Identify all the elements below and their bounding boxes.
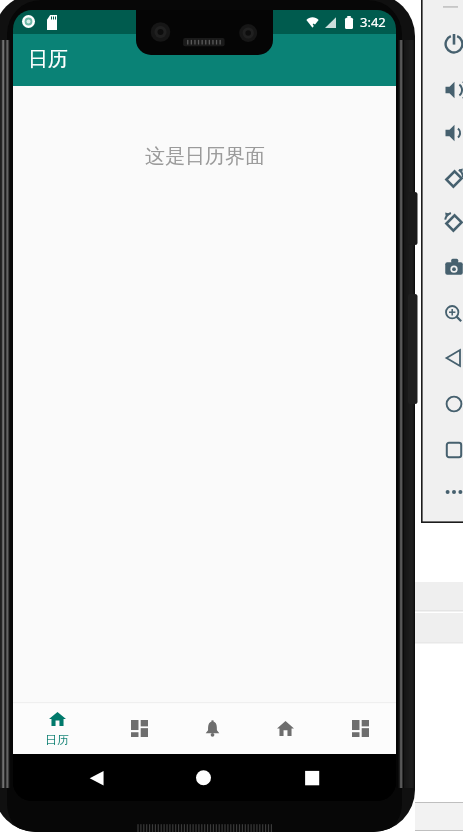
button[interactable]: 日历 (13, 703, 101, 754)
button[interactable]: Home (440, 390, 463, 418)
button[interactable]: Home (248, 703, 322, 754)
button[interactable]: Dashboard (323, 703, 396, 754)
staticText: 3:42 (360, 13, 386, 31)
button[interactable]: Zoom (440, 300, 463, 328)
button[interactable]: More (440, 478, 463, 506)
button[interactable]: Notifications (175, 703, 249, 754)
button[interactable]: Rotate left (440, 165, 463, 193)
button[interactable]: Power (440, 30, 463, 58)
button[interactable]: Take screenshot (440, 253, 463, 281)
staticText: 这是日历界面 (145, 144, 265, 169)
button[interactable]: Volume up (440, 76, 463, 104)
staticText: 日历 (45, 732, 69, 747)
button[interactable]: Rotate right (440, 209, 463, 237)
button[interactable]: Overview (440, 436, 463, 464)
button[interactable]: Dashboard (102, 703, 176, 754)
button[interactable]: Volume down (440, 119, 463, 147)
staticText: 日历 (28, 47, 68, 72)
button[interactable]: Back (440, 344, 463, 372)
